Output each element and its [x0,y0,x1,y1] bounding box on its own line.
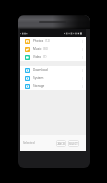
staticText: Photos [33,39,44,43]
button[interactable]: More options [80,55,84,59]
staticText: (12) [45,39,50,43]
button[interactable]: More options [80,68,84,72]
button[interactable]: CANCEL [56,140,66,147]
staticText: Music [33,47,42,51]
staticText: Download [33,68,48,72]
button[interactable]: More options [80,76,84,80]
button[interactable]: Music [20,45,86,53]
staticText: Selected [23,141,35,145]
button[interactable]: More options [80,39,84,43]
button[interactable]: More options [80,47,84,51]
staticText: Storage [33,84,45,88]
staticText: System [33,76,44,80]
button[interactable]: Storage [20,82,86,90]
button[interactable]: SELECT [68,140,79,147]
button[interactable]: Download [20,66,86,74]
button[interactable]: System [20,74,86,82]
button[interactable]: More options [80,84,84,88]
button[interactable]: Photos [20,37,86,45]
staticText: SELECT [69,142,78,146]
staticText: Video [33,55,42,59]
staticText: CANCEL [56,142,66,146]
staticText: (30) [43,47,48,51]
staticText: (7) [43,55,47,59]
button[interactable]: Video [20,53,86,61]
